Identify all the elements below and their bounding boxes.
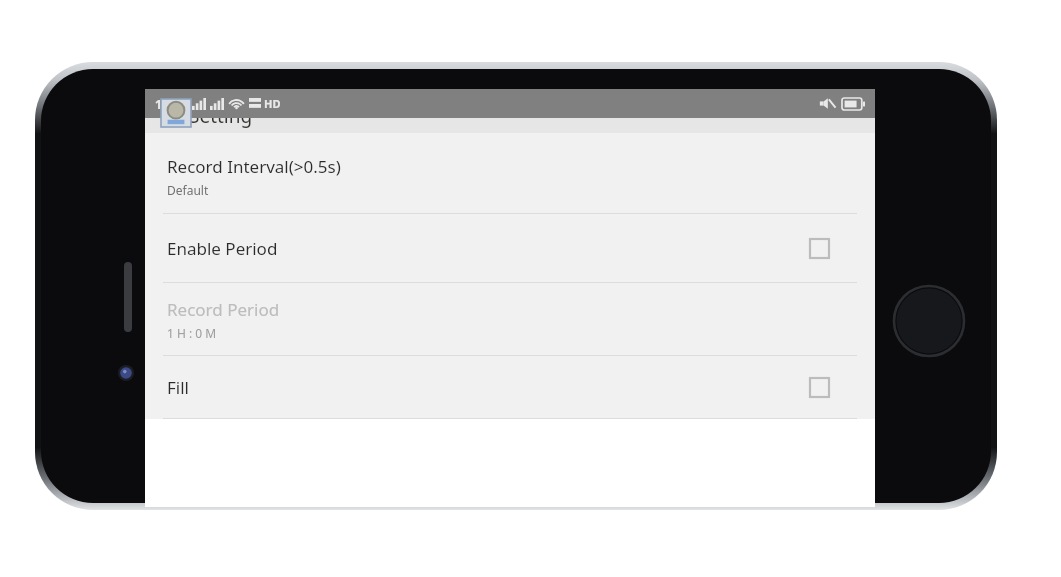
staticText: Default [167,182,209,198]
staticText: HD [264,96,281,111]
staticText: 10:10 [155,96,186,112]
button[interactable]: Record Period [145,283,875,355]
button[interactable]: Fill [145,356,875,418]
staticText: Record Interval(>0.5s) [167,155,341,178]
staticText: Setting [189,103,253,129]
other: Home [892,284,966,358]
staticText: Enable Period [167,237,278,260]
staticText: Record Period [167,298,280,321]
staticText: 1 H : 0 M [167,325,217,341]
staticText: Fill [167,376,189,399]
button[interactable]: Record Interval(>0.5s) [145,139,875,213]
button[interactable]: Enable Period [145,214,875,282]
